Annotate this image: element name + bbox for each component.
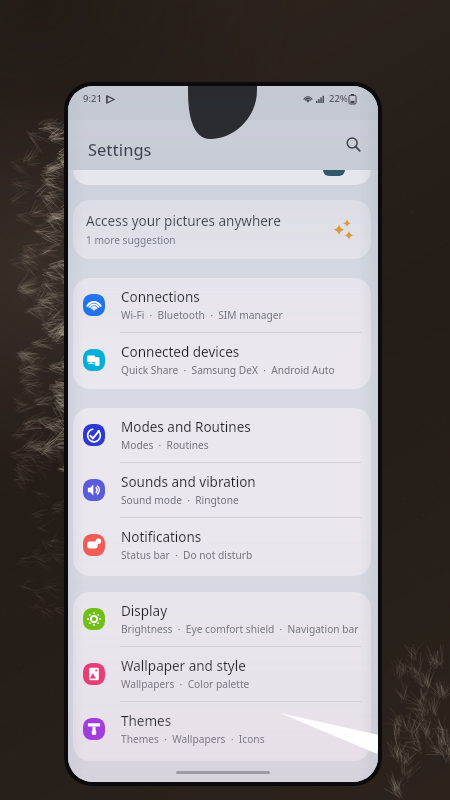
button[interactable]: Access your pictures anywhere — [73, 200, 371, 259]
staticText: Notifications — [121, 528, 202, 546]
staticText: Quick Share · Samsung DeX · Android Auto — [121, 363, 335, 377]
staticText: Settings — [88, 139, 152, 161]
staticText: Modes · Routines — [121, 438, 209, 452]
button[interactable]: Notifications — [73, 518, 371, 572]
staticText: Brightness · Eye comfort shield · Naviga… — [121, 622, 359, 636]
staticText: 1 more suggestion — [86, 233, 176, 247]
staticText: Status bar · Do not disturb — [121, 548, 253, 562]
staticText: Connections — [121, 288, 200, 306]
button[interactable]: Wallpaper and style — [73, 647, 371, 702]
staticText: Wi-Fi · Bluetooth · SIM manager — [121, 308, 283, 322]
staticText: Connected devices — [121, 343, 240, 361]
staticText: 9:21 — [83, 92, 102, 105]
staticText: Access your pictures anywhere — [86, 212, 281, 230]
button[interactable]: Themes — [73, 702, 371, 756]
staticText: Themes — [121, 712, 172, 730]
staticText: Wallpaper and style — [121, 657, 246, 675]
staticText: Themes · Wallpapers · Icons — [121, 732, 265, 746]
button[interactable]: Search — [340, 131, 366, 157]
staticText: Wallpapers · Color palette — [121, 677, 250, 691]
staticText: Modes and Routines — [121, 418, 251, 436]
button[interactable]: Connected devices — [73, 333, 371, 387]
staticText: Sound mode · Ringtone — [121, 493, 239, 507]
button[interactable]: Modes and Routines — [73, 408, 371, 463]
button[interactable]: Connections — [73, 278, 371, 333]
staticText: 22% — [329, 92, 348, 105]
staticText: Sounds and vibration — [121, 473, 256, 491]
button[interactable]: Sounds and vibration — [73, 463, 371, 518]
staticText: Display — [121, 602, 168, 620]
button[interactable]: Display — [73, 592, 371, 647]
button[interactable] — [73, 170, 371, 185]
